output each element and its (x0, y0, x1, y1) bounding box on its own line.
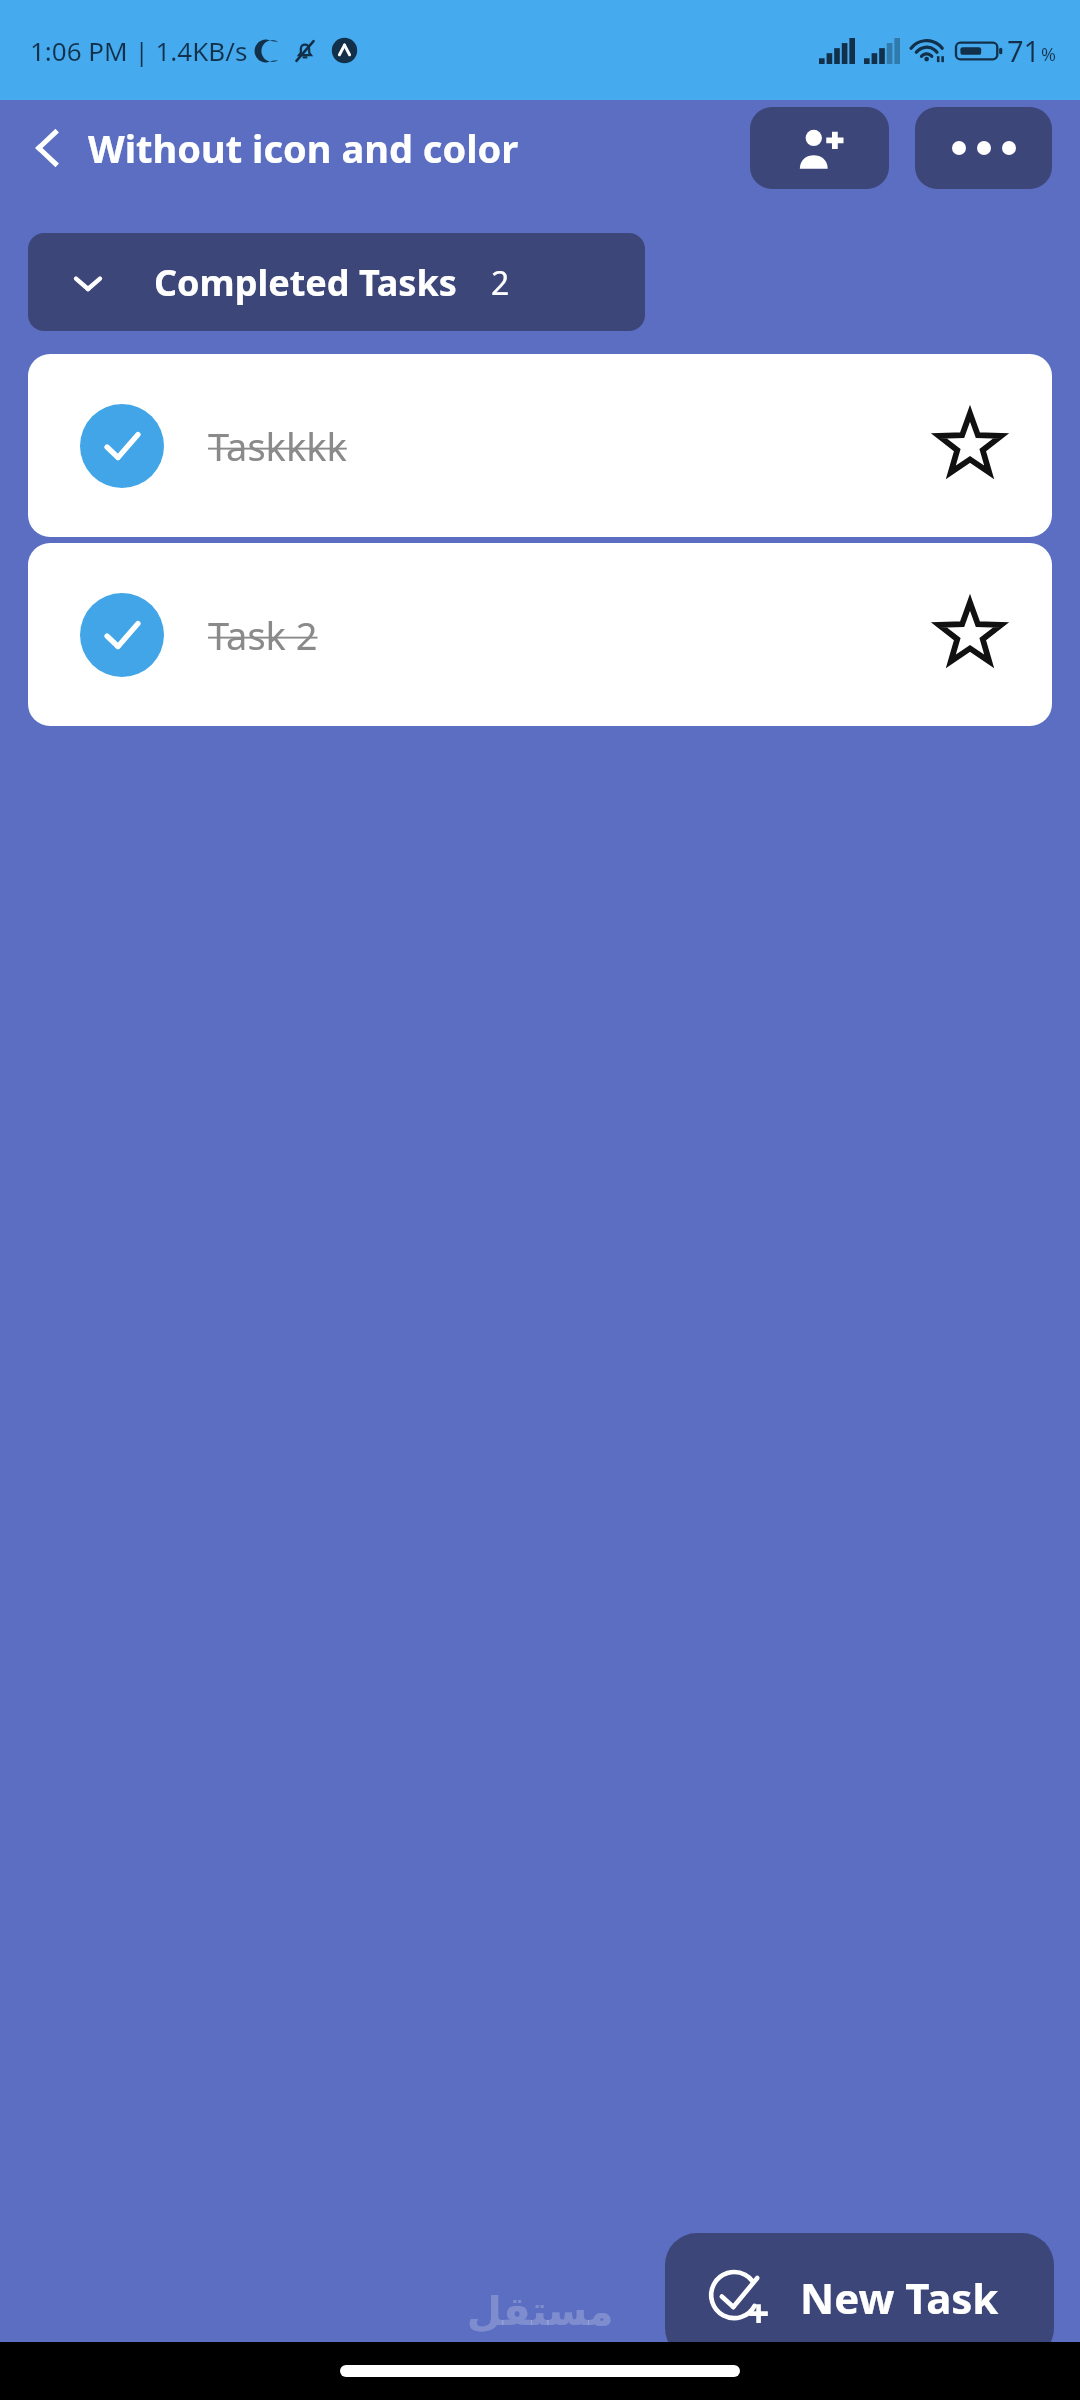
button[interactable]: More options (915, 107, 1052, 189)
staticText: 71 (1007, 31, 1041, 70)
staticText: Taskkkk (208, 420, 930, 472)
button[interactable]: Mark incomplete (80, 404, 164, 488)
staticText: Without icon and color (88, 122, 519, 174)
staticText: Completed Tasks (154, 258, 457, 307)
staticText: mostaql.com (458, 2337, 623, 2374)
staticText: Task 2 (208, 609, 930, 661)
button[interactable]: Back (0, 100, 96, 196)
button[interactable]: Favorite (930, 595, 1010, 675)
button[interactable]: Mark incomplete (80, 593, 164, 677)
staticText: 1:06 PM | 1.4KB/s (30, 33, 248, 68)
button[interactable]: Add member (750, 107, 889, 189)
button[interactable]: Mark incomplete (28, 354, 1052, 537)
staticText: مستقل (467, 2288, 614, 2335)
button[interactable]: New Task (665, 2233, 1054, 2360)
button[interactable]: Completed Tasks (28, 233, 645, 331)
button[interactable]: Mark incomplete (28, 543, 1052, 726)
staticText: % (1041, 42, 1056, 67)
button[interactable]: Favorite (930, 406, 1010, 486)
staticText: 2 (491, 261, 510, 305)
staticText: New Task (800, 2269, 999, 2326)
